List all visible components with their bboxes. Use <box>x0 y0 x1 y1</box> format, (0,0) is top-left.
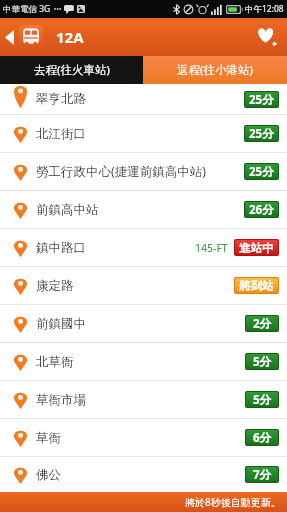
staticText: 中午12:08 <box>245 3 284 15</box>
staticText: 26分 <box>249 202 274 217</box>
staticText: 6分 <box>253 430 272 445</box>
staticText: 前鎮國中 <box>36 316 86 332</box>
staticText: 前鎮高中站 <box>36 202 99 218</box>
button[interactable]: 草衙 <box>0 419 287 456</box>
staticText: 145-FT <box>195 241 228 255</box>
staticText: 25分 <box>249 164 274 179</box>
button[interactable]: 返程(往小港站) <box>143 56 287 84</box>
button[interactable]: 前鎮國中 <box>0 305 287 342</box>
staticText: 去程(往火車站) <box>34 62 110 78</box>
staticText: 勞工行政中心(捷運前鎮高中站) <box>36 163 207 180</box>
staticText: 翠亨北路 <box>36 91 86 107</box>
staticText: 草衙 <box>36 430 61 446</box>
button[interactable]: 草衙市場 <box>0 381 287 418</box>
button[interactable]: 鎮中路口 <box>0 229 287 266</box>
button[interactable]: 康定路 <box>0 267 287 304</box>
staticText: 將到站 <box>239 279 274 293</box>
staticText: 康定路 <box>36 278 74 294</box>
button[interactable]: 加入最愛 <box>247 18 287 56</box>
staticText: 草衙市場 <box>36 392 86 408</box>
staticText: 鎮中路口 <box>36 240 86 256</box>
button[interactable]: 北江街口 <box>0 115 287 152</box>
staticText: 5分 <box>253 354 272 369</box>
button[interactable]: 前鎮高中站 <box>0 191 287 228</box>
staticText: 2分 <box>253 316 272 331</box>
staticText: 進站中 <box>239 241 274 255</box>
staticText: 7分 <box>253 467 272 482</box>
staticText: 25分 <box>249 92 274 107</box>
button[interactable]: 北草衙 <box>0 343 287 380</box>
staticText: 12A <box>56 27 84 47</box>
staticText: 25分 <box>249 126 274 141</box>
staticText: 5分 <box>253 392 272 407</box>
button[interactable]: 佛公 <box>0 457 287 492</box>
staticText: 佛公 <box>36 467 61 483</box>
staticText: 將於8秒後自動更新。 <box>185 495 281 509</box>
staticText: 北草衙 <box>36 354 74 370</box>
staticText: 中華電信 3G <box>3 3 51 15</box>
staticText: 北江街口 <box>36 126 86 142</box>
button[interactable]: 返回 <box>0 18 47 56</box>
staticText: 返程(往小港站) <box>177 62 253 78</box>
button[interactable]: 翠亨北路 <box>0 84 287 114</box>
button[interactable]: 去程(往火車站) <box>0 56 143 84</box>
button[interactable]: 勞工行政中心(捷運前鎮高中站) <box>0 153 287 190</box>
